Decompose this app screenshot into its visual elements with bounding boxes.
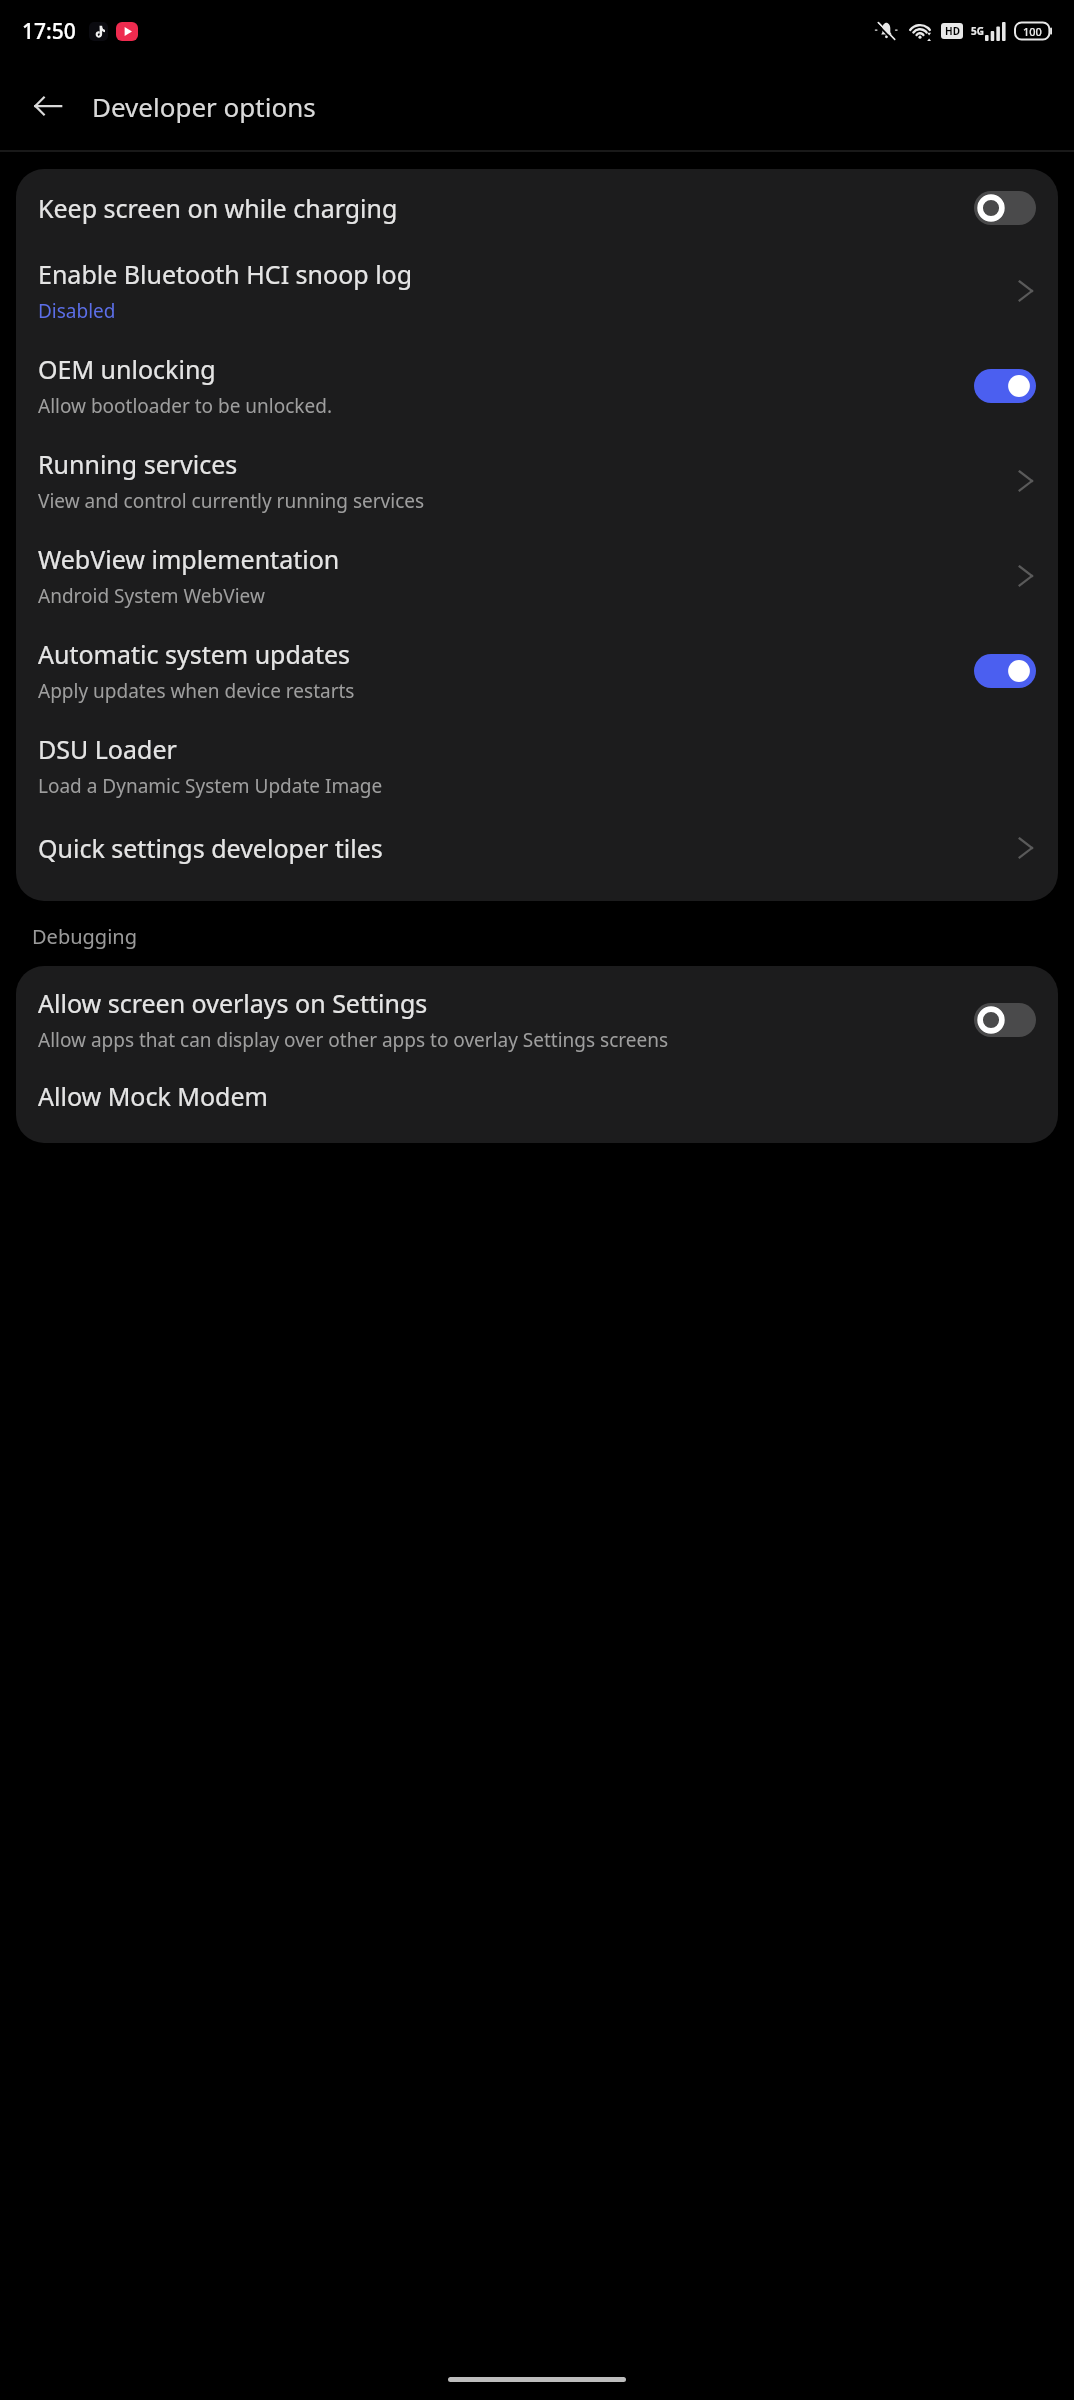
staticText: Load a Dynamic System Update Image: [38, 773, 383, 799]
staticText: 100: [1023, 24, 1042, 39]
button[interactable]: Running services: [16, 433, 1058, 528]
button[interactable]: OEM unlocking: [16, 340, 1058, 433]
button[interactable]: Automatic system updates: [16, 623, 1058, 718]
staticText: Automatic system updates: [38, 637, 350, 671]
staticText: Apply updates when device restarts: [38, 678, 355, 704]
button[interactable]: Allow screen overlays on Settings: [16, 966, 1058, 1069]
staticText: Allow Mock Modem: [38, 1079, 268, 1113]
button[interactable]: DSU Loader: [16, 718, 1058, 813]
staticText: 17:50: [22, 17, 76, 46]
staticText: WebView implementation: [38, 542, 340, 576]
staticText: Developer options: [92, 89, 316, 124]
staticText: 5G: [971, 24, 984, 38]
staticText: View and control currently running servi…: [38, 488, 425, 514]
button[interactable]: On: [974, 654, 1036, 688]
staticText: OEM unlocking: [38, 352, 216, 386]
button[interactable]: Enable Bluetooth HCI snoop log: [16, 247, 1058, 340]
staticText: Running services: [38, 447, 238, 481]
staticText: Allow screen overlays on Settings: [38, 986, 428, 1020]
staticText: Enable Bluetooth HCI snoop log: [38, 257, 413, 291]
button[interactable]: Off: [974, 191, 1036, 225]
staticText: Quick settings developer tiles: [38, 831, 383, 865]
button[interactable]: Back: [20, 78, 76, 134]
button[interactable]: WebView implementation: [16, 528, 1058, 623]
button[interactable]: Quick settings developer tiles: [16, 813, 1058, 901]
staticText: HD: [945, 24, 960, 38]
button[interactable]: Keep screen on while charging: [16, 169, 1058, 247]
staticText: Allow apps that can display over other a…: [38, 1027, 669, 1053]
staticText: Android System WebView: [38, 583, 265, 609]
button[interactable]: Allow Mock Modem: [16, 1069, 1058, 1143]
staticText: Keep screen on while charging: [38, 191, 398, 225]
button[interactable]: On: [974, 369, 1036, 403]
staticText: Disabled: [38, 298, 116, 324]
staticText: Allow bootloader to be unlocked.: [38, 393, 332, 419]
button[interactable]: Off: [974, 1003, 1036, 1037]
staticText: Debugging: [32, 923, 137, 950]
staticText: DSU Loader: [38, 732, 177, 766]
